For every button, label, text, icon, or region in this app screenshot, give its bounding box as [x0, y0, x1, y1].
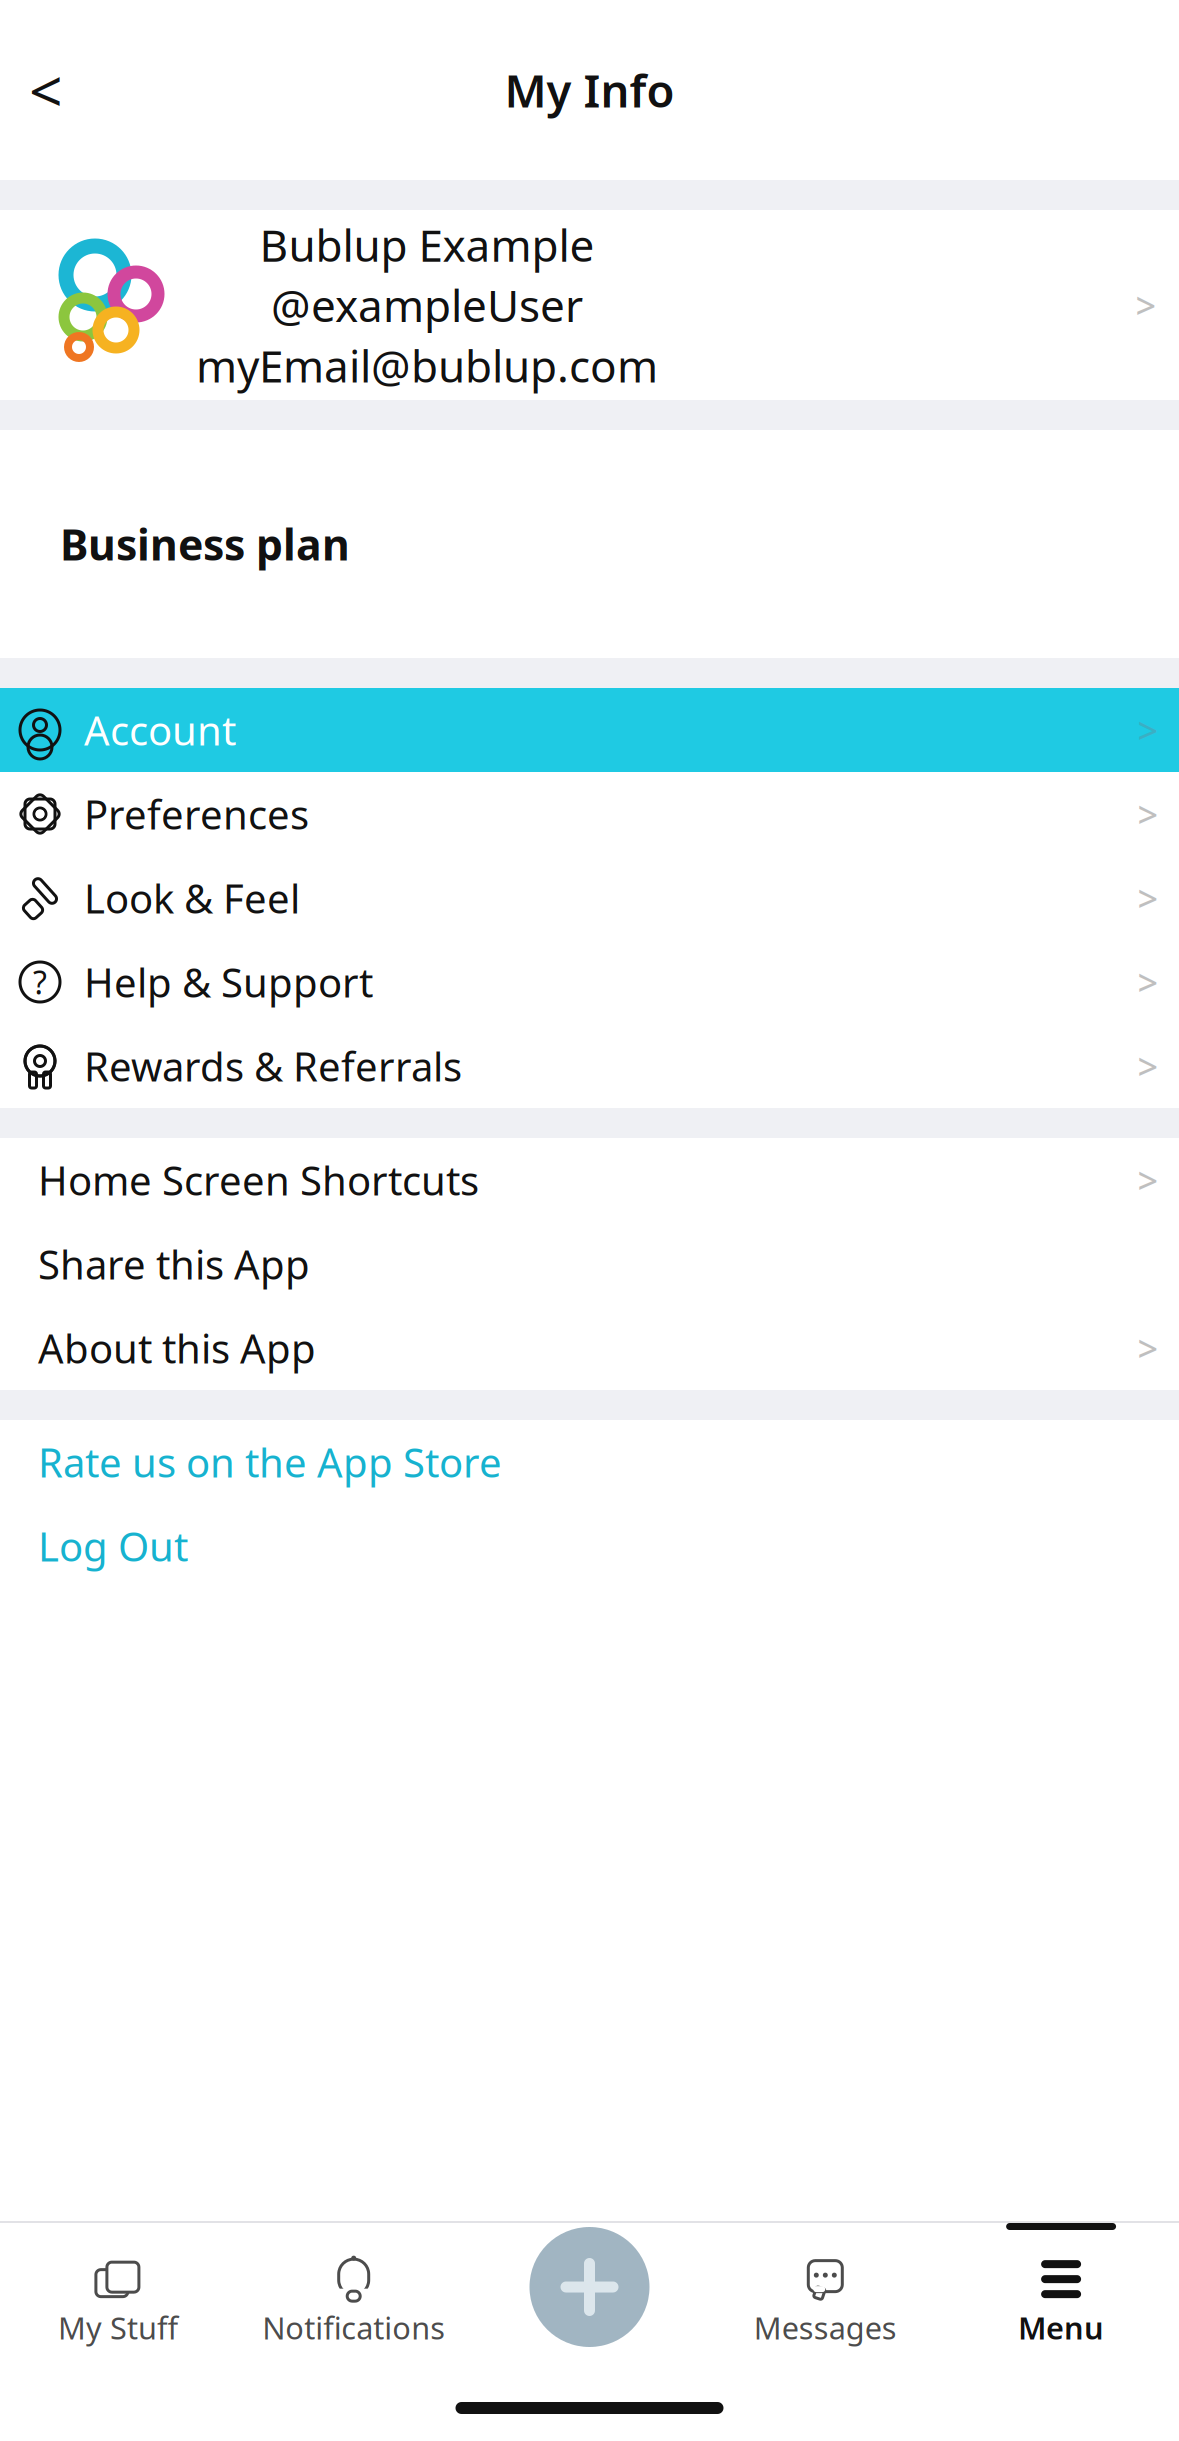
staticText: > [1135, 281, 1156, 329]
button[interactable]: Preferences [0, 772, 1179, 856]
staticText: Rate us on the App Store [38, 1435, 502, 1488]
staticText: Home Screen Shortcuts [38, 1153, 479, 1206]
staticText: Account [84, 703, 236, 756]
staticText: > [1137, 1156, 1158, 1204]
staticText: Menu [1018, 2307, 1104, 2348]
button[interactable]: Notifications [236, 2223, 472, 2375]
button[interactable]: Bublup Example [0, 210, 1179, 400]
staticText: Rewards & Referrals [84, 1039, 462, 1092]
button[interactable]: Rate us on the App Store [0, 1420, 1179, 1504]
staticText: Notifications [262, 2307, 445, 2348]
button[interactable]: My Stuff [0, 2223, 236, 2375]
staticText: My Stuff [58, 2307, 178, 2348]
button[interactable]: Home Screen Shortcuts [0, 1138, 1179, 1222]
button[interactable]: Menu [943, 2223, 1179, 2375]
staticText: > [1137, 958, 1158, 1006]
button[interactable] [472, 2223, 707, 2375]
staticText: Bublup Example [259, 215, 594, 274]
staticText: Preferences [84, 787, 309, 840]
button[interactable]: About this App [0, 1306, 1179, 1390]
button[interactable]: Share this App [0, 1222, 1179, 1306]
button[interactable]: Account [0, 688, 1179, 772]
staticText: Business plan [60, 516, 350, 572]
staticText: > [1137, 1042, 1158, 1090]
staticText: > [1137, 790, 1158, 838]
staticText: My Info [504, 60, 674, 120]
staticText: > [1137, 706, 1158, 754]
button[interactable]: Log Out [0, 1504, 1179, 1588]
staticText: Look & Feel [84, 871, 300, 924]
button[interactable]: Look & Feel [0, 856, 1179, 940]
button[interactable]: ? [0, 940, 1179, 1024]
staticText: > [1137, 874, 1158, 922]
button[interactable]: Add [529, 2227, 649, 2347]
staticText: Messages [754, 2307, 897, 2348]
staticText: @exampleUser [271, 276, 583, 334]
staticText: myEmail@bublup.com [196, 336, 658, 395]
button[interactable]: Back [10, 54, 82, 126]
staticText: Help & Support [84, 955, 373, 1008]
button[interactable]: Messages [707, 2223, 943, 2375]
staticText: Share this App [38, 1237, 310, 1290]
staticText: > [1137, 1324, 1158, 1372]
staticText: Log Out [38, 1519, 188, 1572]
staticText: About this App [38, 1321, 316, 1374]
button[interactable]: Rewards & Referrals [0, 1024, 1179, 1108]
staticText: ? [33, 961, 47, 1003]
staticText: < [29, 51, 63, 129]
